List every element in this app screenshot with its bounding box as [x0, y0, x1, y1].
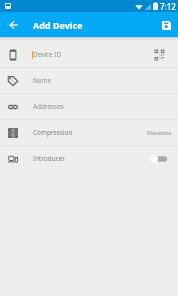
- staticText: Introducer: [33, 154, 65, 163]
- button[interactable]: Save: [157, 16, 175, 34]
- staticText: Compression: [33, 128, 73, 137]
- staticText: 7:12: [160, 1, 176, 12]
- button[interactable]: Back: [4, 16, 22, 34]
- staticText: Device ID: [33, 50, 62, 59]
- staticText: Name: [33, 76, 52, 85]
- button[interactable]: Device ID: [0, 42, 178, 67]
- button[interactable]: Name: [0, 68, 178, 93]
- staticText: Metadata: [147, 129, 172, 136]
- staticText: Addresses: [33, 102, 64, 111]
- button[interactable]: Addresses: [0, 94, 178, 119]
- button[interactable]: Introducer toggle: [150, 150, 169, 168]
- staticText: Add Device: [33, 19, 83, 31]
- button[interactable]: Scan QR code: [150, 46, 168, 64]
- button[interactable]: Introducer: [0, 146, 178, 171]
- button[interactable]: Compression: [0, 120, 178, 145]
